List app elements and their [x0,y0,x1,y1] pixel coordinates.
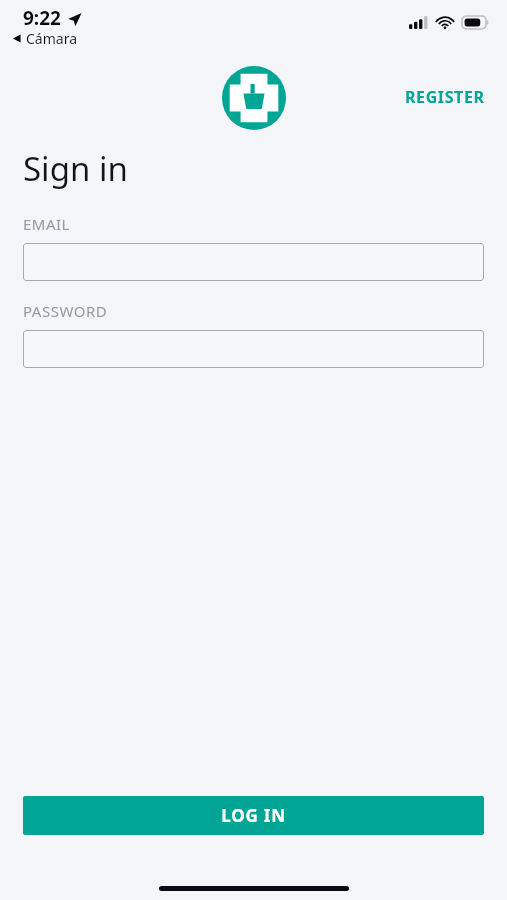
button[interactable]: EMAIL [23,243,484,281]
staticText: PASSWORD [23,301,108,321]
button[interactable]: REGISTER [383,80,507,114]
staticText: Cámara [26,29,78,48]
button[interactable]: LOG IN [23,796,484,835]
button[interactable]: PASSWORD [23,330,484,368]
staticText: EMAIL [23,214,70,234]
staticText: LOG IN [221,804,286,827]
other: App logo [222,66,286,126]
staticText: Sign in [23,146,128,191]
staticText: 9:22 [23,5,61,31]
staticText: REGISTER [405,86,485,108]
